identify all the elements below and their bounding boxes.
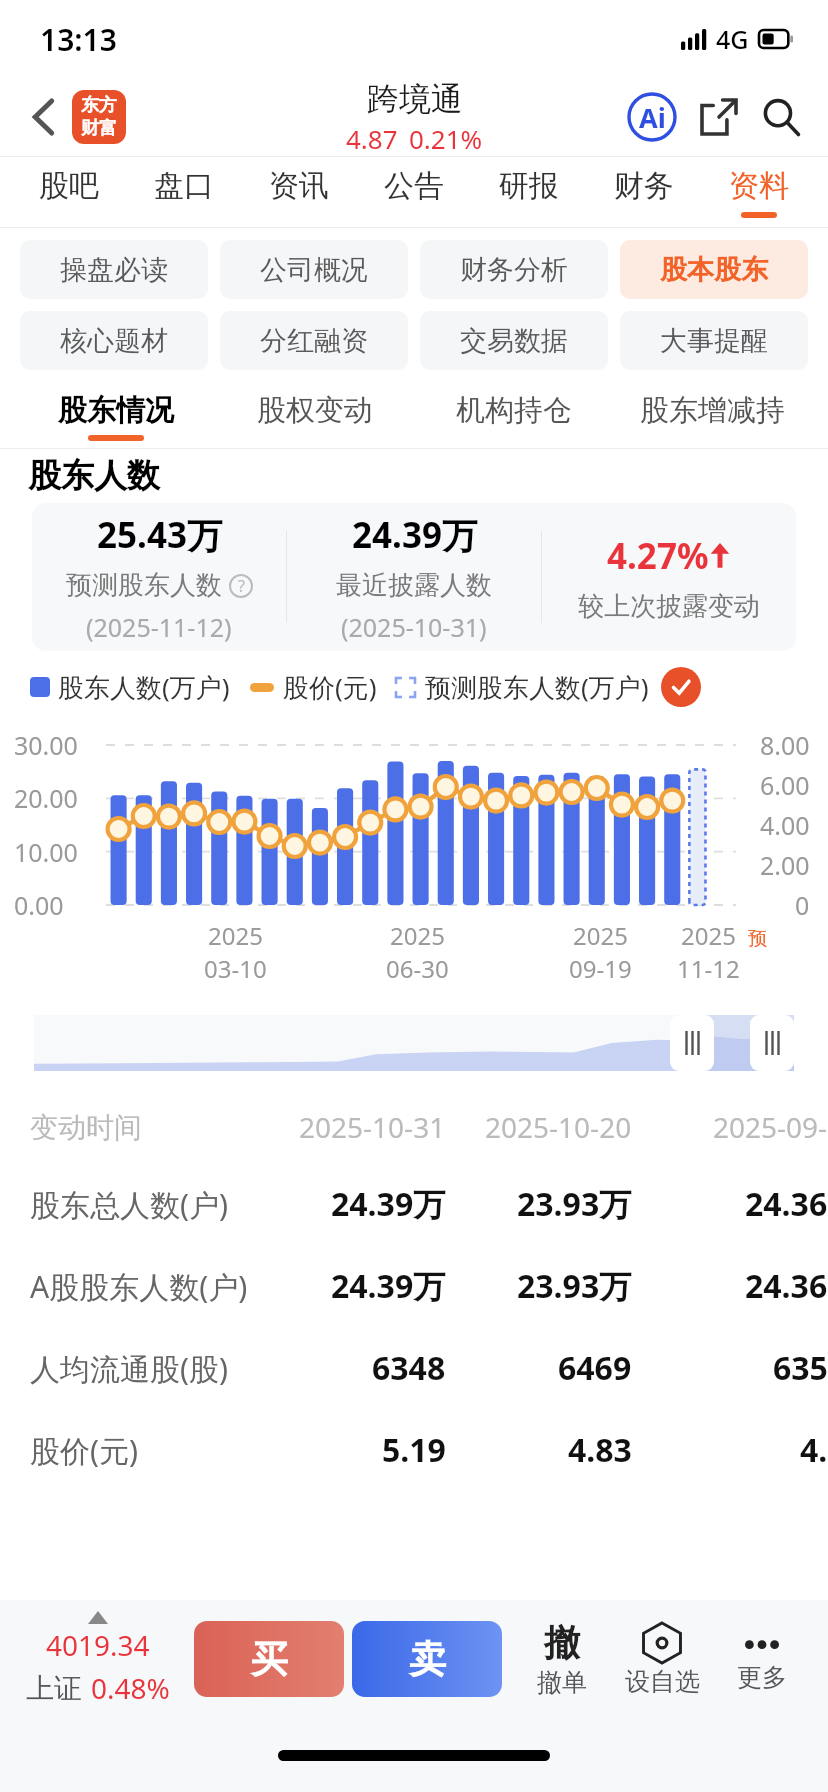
button[interactable]: Range handle (34, 1015, 794, 1071)
staticText: 2025 (573, 919, 628, 952)
staticText: 6348 (372, 1346, 446, 1390)
staticText: 2025-10-20 (485, 1108, 632, 1146)
staticText: 0.48% (91, 1669, 170, 1707)
button[interactable]: East Money (72, 90, 126, 144)
button[interactable]: 人均流通股(股) (30, 1327, 828, 1409)
staticText: 24.36 (745, 1264, 828, 1308)
button[interactable]: 操盘必读 (20, 240, 208, 299)
button[interactable]: 股东增减持 (613, 384, 812, 448)
staticText: 6469 (558, 1346, 632, 1390)
button[interactable]: Search (754, 90, 808, 144)
button[interactable]: 卖 (352, 1621, 502, 1697)
staticText: 635 (773, 1346, 828, 1390)
button[interactable]: Range handle (750, 1015, 794, 1071)
staticText: 股东总人数(户) (30, 1184, 260, 1225)
button[interactable]: 股权变动 (215, 384, 414, 448)
staticText: 大事提醒 (660, 324, 768, 358)
button[interactable]: 核心题材 (20, 311, 208, 370)
button[interactable]: 公司概况 (220, 240, 408, 299)
button[interactable]: 资料 (701, 157, 816, 227)
staticText: 卖 (409, 1636, 446, 1683)
staticText: 24.36 (745, 1182, 828, 1226)
button[interactable]: Back (20, 93, 68, 141)
button[interactable]: 研报 (471, 157, 586, 227)
button[interactable]: 大事提醒 (620, 311, 808, 370)
button[interactable]: 买 (194, 1621, 344, 1697)
staticText: 撤 (544, 1620, 580, 1665)
staticText: 24.39万 (331, 1264, 446, 1308)
button[interactable]: 资讯 (241, 157, 356, 227)
staticText: 财务分析 (460, 253, 568, 287)
button[interactable]: 25.43万 (32, 503, 286, 651)
staticText: 0 (795, 888, 810, 922)
staticText: (2025-10-31) (341, 610, 487, 644)
staticText: 操盘必读 (60, 253, 168, 287)
staticText: 机构持仓 (456, 392, 572, 429)
staticText: 股价(元) (30, 1430, 260, 1471)
staticText: 股吧 (39, 167, 99, 205)
staticText: 30.00 (14, 728, 78, 762)
button[interactable]: 撤 (512, 1620, 612, 1698)
staticText: 股权变动 (257, 392, 373, 429)
button[interactable]: 分红融资 (220, 311, 408, 370)
button[interactable]: 4.27% (542, 503, 796, 651)
staticText: A股股东人数(户) (30, 1266, 260, 1307)
staticText: 股东人数(万户) (58, 669, 230, 705)
staticText: 4. (800, 1428, 828, 1472)
button[interactable]: Help (229, 574, 253, 598)
staticText: 03-10 (204, 952, 267, 985)
staticText: 2025 (390, 919, 445, 952)
staticText: 预测股东人数 (66, 569, 222, 602)
button[interactable]: 财务分析 (420, 240, 608, 299)
staticText: 5.19 (382, 1428, 446, 1472)
button[interactable]: 交易数据 (420, 311, 608, 370)
staticText: 24.39万 (331, 1182, 446, 1226)
staticText: 23.93万 (517, 1264, 632, 1308)
staticText: 2.00 (760, 848, 810, 882)
staticText: Ai (639, 99, 666, 136)
button[interactable]: 股东总人数(户) (30, 1163, 828, 1245)
button[interactable]: 股东情况 (16, 384, 215, 448)
button[interactable]: 股本股东 (620, 240, 808, 299)
staticText: 股东增减持 (640, 392, 785, 429)
button[interactable]: 机构持仓 (414, 384, 613, 448)
staticText: 公告 (384, 167, 444, 205)
staticText: 2025 (681, 919, 736, 952)
button[interactable]: Share (692, 90, 746, 144)
staticText: 2025-10-31 (299, 1108, 446, 1146)
button[interactable]: 财务 (586, 157, 701, 227)
staticText: 东方 (81, 94, 117, 117)
button[interactable]: 股吧 (12, 157, 126, 227)
button[interactable]: 更多 (712, 1626, 812, 1693)
staticText: 0.00 (14, 888, 64, 922)
button[interactable]: Range handle (670, 1015, 714, 1071)
staticText: 盘口 (154, 167, 214, 205)
button[interactable]: AI assistant (624, 89, 680, 145)
staticText: 研报 (499, 167, 559, 205)
staticText: 股东情况 (58, 392, 174, 429)
staticText: 预测股东人数(万户) (425, 669, 649, 705)
button[interactable]: A股股东人数(户) (30, 1245, 828, 1327)
button[interactable]: Toggle forecast series (661, 667, 701, 707)
button[interactable]: 公告 (356, 157, 471, 227)
button[interactable]: 设自选 (612, 1622, 712, 1697)
staticText: 最近披露人数 (336, 569, 492, 602)
staticText: 更多 (737, 1662, 787, 1693)
button[interactable]: 股价(元) (30, 1409, 828, 1491)
staticText: 09-19 (569, 952, 632, 985)
button[interactable]: 盘口 (126, 157, 241, 227)
staticText: 4.83 (568, 1428, 632, 1472)
staticText: 上证 (26, 1671, 82, 1706)
staticText: (2025-11-12) (86, 610, 232, 644)
staticText: 13:13 (40, 19, 117, 60)
button[interactable]: 4019.34 (16, 1611, 180, 1707)
staticText: 20.00 (14, 781, 78, 815)
staticText: 预 (748, 927, 767, 951)
button[interactable]: 24.39万 (287, 503, 541, 651)
staticText: 8.00 (760, 728, 810, 762)
staticText: 2025 (208, 919, 263, 952)
staticText: 股价(元) (283, 669, 377, 705)
staticText: 买 (251, 1636, 288, 1683)
staticText: 4.27% (607, 532, 709, 580)
staticText: 10.00 (14, 835, 78, 869)
